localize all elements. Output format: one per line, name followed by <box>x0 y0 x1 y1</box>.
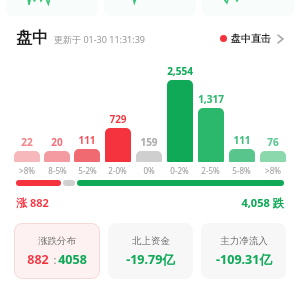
staticText: 涨 882 <box>16 195 49 210</box>
staticText: 111 <box>233 133 251 147</box>
staticText: 北上资金 <box>132 235 170 247</box>
staticText: 2,554 <box>167 64 193 78</box>
staticText: 5-2% <box>78 165 97 176</box>
staticText: -109.31亿 <box>216 251 272 268</box>
button[interactable]: 盘中直击 <box>220 32 284 45</box>
button[interactable] <box>198 108 224 162</box>
staticText: 4058 <box>58 251 87 268</box>
staticText: 729 <box>109 112 127 126</box>
staticText: 更新于 01-30 11:31:39 <box>54 33 145 45</box>
staticText: 5-8% <box>232 165 251 176</box>
staticText: 盘中 <box>16 28 48 48</box>
staticText: 主力净流入 <box>220 235 268 247</box>
staticText: 8-5% <box>48 165 67 176</box>
button[interactable] <box>74 149 100 162</box>
button[interactable] <box>44 151 70 162</box>
button[interactable]: Index mini chart <box>6 0 98 16</box>
staticText: 盘中直击 <box>231 32 271 45</box>
staticText: 涨跌分布 <box>38 235 76 247</box>
staticText: 22 <box>21 135 33 149</box>
staticText: 76 <box>267 135 279 149</box>
button[interactable] <box>260 151 286 162</box>
button[interactable] <box>167 80 193 162</box>
staticText: 882 <box>27 251 49 268</box>
staticText: -19.79亿 <box>126 251 175 268</box>
staticText: 4,058 跌 <box>241 195 284 210</box>
staticText: 2-0% <box>108 165 127 176</box>
button[interactable] <box>229 149 255 162</box>
staticText: 2-5% <box>201 165 220 176</box>
button[interactable]: Index mini chart <box>202 0 294 16</box>
staticText: 159 <box>140 135 158 149</box>
staticText: 111 <box>78 133 96 147</box>
staticText: 0% <box>143 165 155 176</box>
button[interactable] <box>105 128 131 162</box>
staticText: 0-2% <box>170 165 189 176</box>
button[interactable] <box>14 151 40 162</box>
staticText: >8% <box>19 165 35 176</box>
staticText: 20 <box>51 135 63 149</box>
staticText: 1,317 <box>198 92 224 106</box>
button[interactable]: 主力净流入 <box>201 223 286 279</box>
staticText: : <box>49 252 58 267</box>
button[interactable]: Index mini chart <box>104 0 196 16</box>
staticText: >8% <box>265 165 281 176</box>
button[interactable]: 北上资金 <box>108 223 193 279</box>
button[interactable]: 涨跌分布 <box>14 223 100 279</box>
button[interactable] <box>136 151 162 162</box>
